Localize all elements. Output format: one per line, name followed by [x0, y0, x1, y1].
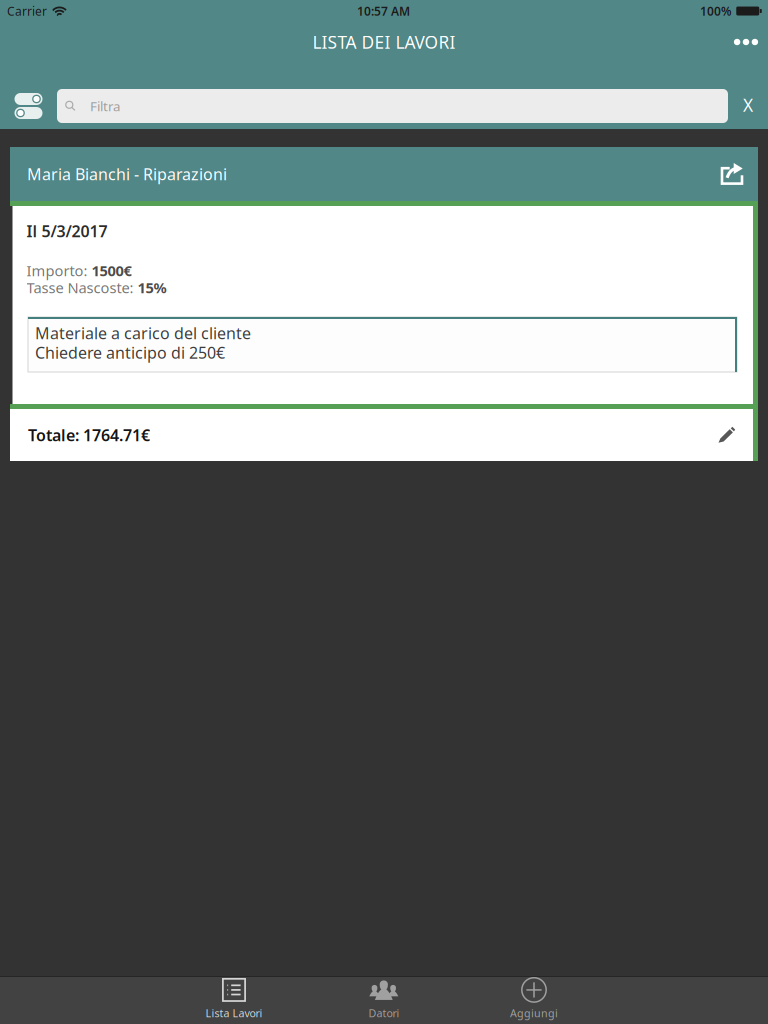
- button[interactable]: Maria Bianchi - Riparazioni: [10, 147, 706, 201]
- staticText: Aggiungi: [510, 1006, 558, 1020]
- staticText: Chiedere anticipo di 250€: [35, 342, 225, 363]
- staticText: Datori: [368, 1006, 399, 1020]
- button[interactable]: Lista Lavori: [159, 977, 309, 1024]
- button[interactable]: Filter settings: [0, 77, 57, 129]
- button[interactable]: Datori: [309, 977, 459, 1024]
- button[interactable]: Edit: [701, 409, 753, 461]
- staticText: Lista Lavori: [205, 1006, 262, 1020]
- button[interactable]: More options: [724, 22, 768, 77]
- staticText: 1500€: [91, 261, 131, 280]
- button[interactable]: Aggiungi: [459, 977, 609, 1024]
- staticText: Maria Bianchi - Riparazioni: [27, 163, 227, 185]
- staticText: X: [743, 93, 753, 116]
- staticText: Filtra: [90, 97, 120, 115]
- staticText: 10:57 AM: [357, 3, 410, 19]
- staticText: Materiale a carico del cliente: [35, 322, 251, 344]
- staticText: Il 5/3/2017: [26, 220, 107, 242]
- staticText: Importo:: [26, 261, 91, 280]
- staticText: 100%: [700, 3, 732, 19]
- staticText: Carrier: [7, 3, 47, 19]
- staticText: 15%: [137, 278, 166, 297]
- staticText: Tasse Nascoste:: [26, 278, 137, 297]
- button[interactable]: Share: [706, 147, 758, 201]
- staticText: Totale: 1764.71€: [28, 424, 150, 446]
- button[interactable]: Clear filter: [728, 77, 768, 129]
- staticText: LISTA DEI LAVORI: [312, 30, 455, 53]
